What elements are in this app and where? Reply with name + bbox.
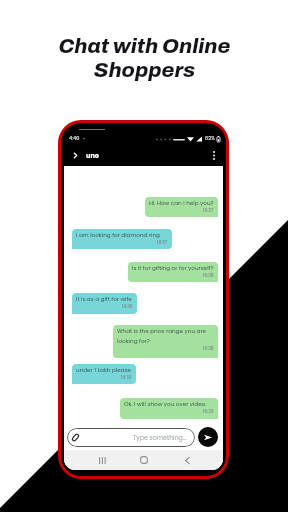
staticText: Hi. How can i help you? xyxy=(149,199,214,207)
button[interactable]: Recents xyxy=(94,452,110,468)
staticText: 16:38 xyxy=(203,272,214,278)
staticText: What is the price range you are looking … xyxy=(117,327,207,345)
staticText: 16:37 xyxy=(203,207,214,213)
button[interactable]: Back xyxy=(68,148,83,163)
staticText: I am looking for diamond ring xyxy=(76,231,160,239)
button[interactable]: Ok. I will show you over video. xyxy=(120,398,218,419)
button[interactable]: It is as a gift for wife xyxy=(72,293,137,314)
button[interactable]: Type something... xyxy=(67,428,195,447)
staticText: 16:38 xyxy=(203,345,214,351)
staticText: 16:39 xyxy=(203,408,214,414)
staticText: 62% xyxy=(205,135,215,142)
button[interactable]: I am looking for diamond ring xyxy=(72,229,172,249)
button[interactable]: Send xyxy=(198,427,218,447)
staticText: Is it for gifting or for yourself? xyxy=(132,264,214,272)
staticText: 16:37 xyxy=(157,239,168,245)
staticText: Ok. I will show you over video. xyxy=(124,400,207,408)
button[interactable]: More options xyxy=(206,148,221,163)
staticText: It is as a gift for wife xyxy=(76,295,132,303)
staticText: Chat with Online Shoppers xyxy=(58,35,231,82)
staticText: under 1 Lakh please xyxy=(76,366,132,374)
button[interactable]: under 1 Lakh please xyxy=(72,364,136,384)
staticText: 16:39 xyxy=(121,374,132,380)
button[interactable]: Back xyxy=(179,452,195,468)
button[interactable]: Is it for gifting or for yourself? xyxy=(128,262,218,282)
staticText: uno xyxy=(86,151,99,160)
button[interactable]: Hi. How can i help you? xyxy=(145,197,218,217)
staticText: 16:38 xyxy=(122,303,133,309)
staticText: 4:40 xyxy=(69,135,80,142)
button[interactable]: Home xyxy=(136,452,152,468)
staticText: Type something... xyxy=(133,433,187,442)
button[interactable]: What is the price range you are looking … xyxy=(113,325,218,358)
